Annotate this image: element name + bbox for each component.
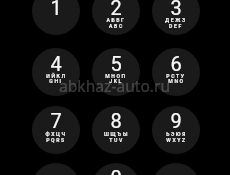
staticText: 2 [110, 0, 122, 19]
button[interactable]: Key 1 [32, 0, 80, 35]
button[interactable]: Key * [32, 163, 80, 175]
staticText: АБВГ [106, 17, 126, 23]
button[interactable]: Key 6 [152, 48, 200, 96]
button[interactable]: Key 7 [32, 106, 80, 154]
staticText: 0 [110, 166, 122, 175]
staticText: TUV [109, 137, 124, 143]
staticText: 3 [170, 0, 182, 19]
button[interactable]: Key 0 [92, 163, 140, 175]
staticText: WXYZ [166, 137, 187, 143]
staticText: 5 [110, 52, 122, 75]
staticText: ДЕЖЗ [165, 17, 187, 23]
staticText: GHI [49, 78, 63, 84]
staticText: 6 [170, 52, 182, 75]
button[interactable]: Key 8 [92, 106, 140, 154]
staticText: РСТУ [166, 73, 186, 79]
staticText: 7 [50, 109, 62, 132]
staticText: 1 [50, 0, 62, 19]
staticText: 8 [110, 109, 122, 132]
staticText: ФХЦЧ [45, 131, 67, 137]
staticText: ШЩЪЫ [104, 131, 129, 137]
staticText: MNO [168, 78, 185, 84]
staticText: ЬЭЮЯ [166, 131, 187, 137]
button[interactable]: Key 4 [32, 48, 80, 96]
button[interactable]: Key 5 [92, 48, 140, 96]
button[interactable]: Key # [152, 163, 200, 175]
staticText: abkhaz-auto.ru [59, 75, 171, 96]
staticText: МНОП [105, 73, 127, 79]
staticText: 9 [170, 109, 182, 132]
staticText: ABC [109, 23, 124, 29]
staticText: PQRS [46, 137, 66, 143]
staticText: ИЙКЛ [46, 73, 67, 79]
staticText: DEF [169, 23, 183, 29]
staticText: JKL [109, 78, 123, 84]
button[interactable]: Key 3 [152, 0, 200, 35]
button[interactable]: Key 9 [152, 106, 200, 154]
button[interactable]: Key 2 [92, 0, 140, 35]
staticText: 4 [50, 52, 62, 75]
